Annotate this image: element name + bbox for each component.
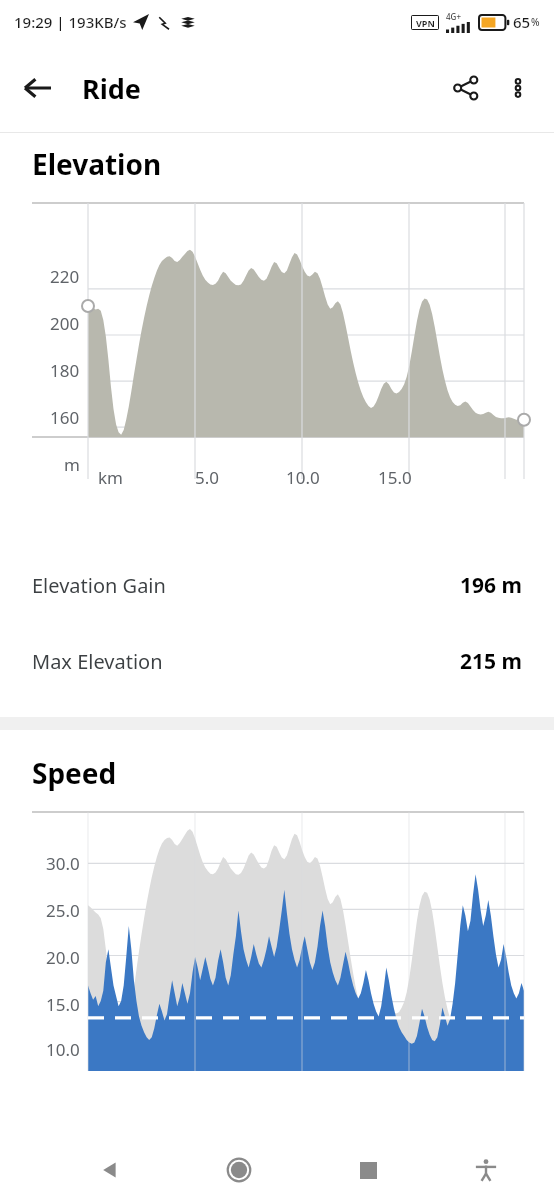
staticText: 10.0 bbox=[46, 1038, 80, 1061]
staticText: 10.0 bbox=[286, 466, 320, 489]
staticText: 160 bbox=[50, 406, 80, 429]
staticText: m bbox=[64, 453, 80, 476]
staticText: Elevation Gain bbox=[32, 572, 166, 599]
staticText: 4G+ bbox=[446, 11, 461, 22]
staticText: 5.0 bbox=[195, 466, 220, 489]
staticText: 25.0 bbox=[46, 899, 80, 922]
button[interactable]: Max Elevation bbox=[0, 623, 554, 699]
button[interactable]: Accessibility bbox=[458, 1142, 514, 1198]
staticText: 30.0 bbox=[46, 852, 80, 875]
staticText: 65 bbox=[513, 12, 531, 32]
staticText: 196 m bbox=[460, 571, 522, 600]
staticText: 180 bbox=[50, 359, 80, 382]
button[interactable]: Share bbox=[440, 62, 492, 114]
button[interactable]: Back bbox=[10, 60, 66, 116]
staticText: Ride bbox=[82, 70, 141, 107]
button[interactable]: Recent apps bbox=[340, 1142, 396, 1198]
staticText: VPN bbox=[416, 17, 435, 29]
staticText: % bbox=[531, 15, 540, 29]
staticText: Speed bbox=[32, 754, 117, 792]
button[interactable]: Elevation Gain bbox=[0, 547, 554, 623]
button[interactable]: More options bbox=[492, 62, 544, 114]
staticText: 15.0 bbox=[46, 993, 80, 1016]
button[interactable]: Back bbox=[82, 1142, 138, 1198]
staticText: 20.0 bbox=[46, 946, 80, 969]
staticText: 215 m bbox=[460, 647, 522, 676]
staticText: km bbox=[98, 466, 123, 489]
button[interactable]: Home bbox=[211, 1142, 267, 1198]
staticText: 220 bbox=[50, 265, 80, 288]
staticText: 15.0 bbox=[378, 466, 412, 489]
staticText: 19:29 | 193KB/s bbox=[14, 12, 127, 32]
staticText: 200 bbox=[50, 312, 80, 335]
staticText: Elevation bbox=[32, 145, 162, 183]
staticText: Max Elevation bbox=[32, 648, 163, 675]
